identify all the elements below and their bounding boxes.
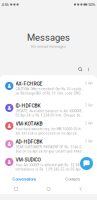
staticText: Messages	[27, 32, 70, 43]
staticText: 50%	[88, 2, 95, 7]
button[interactable]: AX-FCHRGE	[0, 80, 97, 102]
staticText: 4:56	[2, 2, 9, 7]
button[interactable]: More options	[85, 66, 92, 73]
staticText: Your A/c XXXX9 is debited with Rs. 32,58…	[16, 163, 84, 167]
staticText: 2 Apr	[85, 139, 93, 143]
staticText: DEAR CUSTOMER, PAYMENT OF Rs. 5146.00 is	[16, 145, 84, 149]
staticText: A/c XX1234 is processed on 02-Apr-24.	[16, 131, 78, 135]
staticText: ID-HDFCBK	[16, 103, 41, 109]
staticText: 2 Apr	[85, 157, 93, 161]
button[interactable]: Search	[77, 66, 84, 73]
staticText: AD-HDFCBK	[16, 139, 43, 145]
button[interactable]: Start new conversation	[80, 157, 93, 170]
staticText: No unread messages	[31, 44, 66, 48]
staticText: Your fund transfer req. for INR 10000.00…	[16, 127, 84, 131]
staticText: net balance is Rs. 1,09,342.55 on 02-Apr…	[16, 167, 84, 171]
staticText: 2 Apr	[85, 103, 93, 107]
button[interactable]: Contacts	[48, 174, 97, 184]
button[interactable]: Back	[65, 184, 97, 194]
staticText: CAUTION: Offer extended! Get Rs.10 cashb…	[16, 87, 84, 91]
button[interactable]: VM-SUDICO	[0, 156, 97, 174]
staticText: on Recharge/Bill of Rs.19. Use code CRIC…	[16, 91, 84, 95]
staticText: due on 05-Apr-24 for your Credit Card XX…	[16, 149, 84, 153]
staticText: 2 Apr	[85, 81, 93, 85]
staticText: AX-FCHRGE	[16, 81, 43, 87]
staticText: Contacts	[65, 177, 80, 181]
button[interactable]: VM-KOTAKB	[0, 120, 97, 138]
button[interactable]: Conversations	[0, 174, 48, 184]
staticText: UPDATE: Available balance in A/c XXXX889…	[16, 109, 84, 113]
staticText: Conversations	[12, 177, 36, 181]
button[interactable]: Recent apps	[0, 184, 32, 194]
staticText: 02-Apr-24 is Rs.1,234.00 Info: Cheque de…	[16, 113, 84, 117]
staticText: VM-SUDICO	[16, 157, 41, 163]
button[interactable]: AD-HDFCBK	[0, 138, 97, 156]
staticText: 2 Apr	[85, 121, 93, 125]
button[interactable]: ID-HDFCBK	[0, 102, 97, 120]
staticText: VM-KOTAKB	[16, 121, 43, 127]
button[interactable]: Home	[32, 184, 65, 194]
